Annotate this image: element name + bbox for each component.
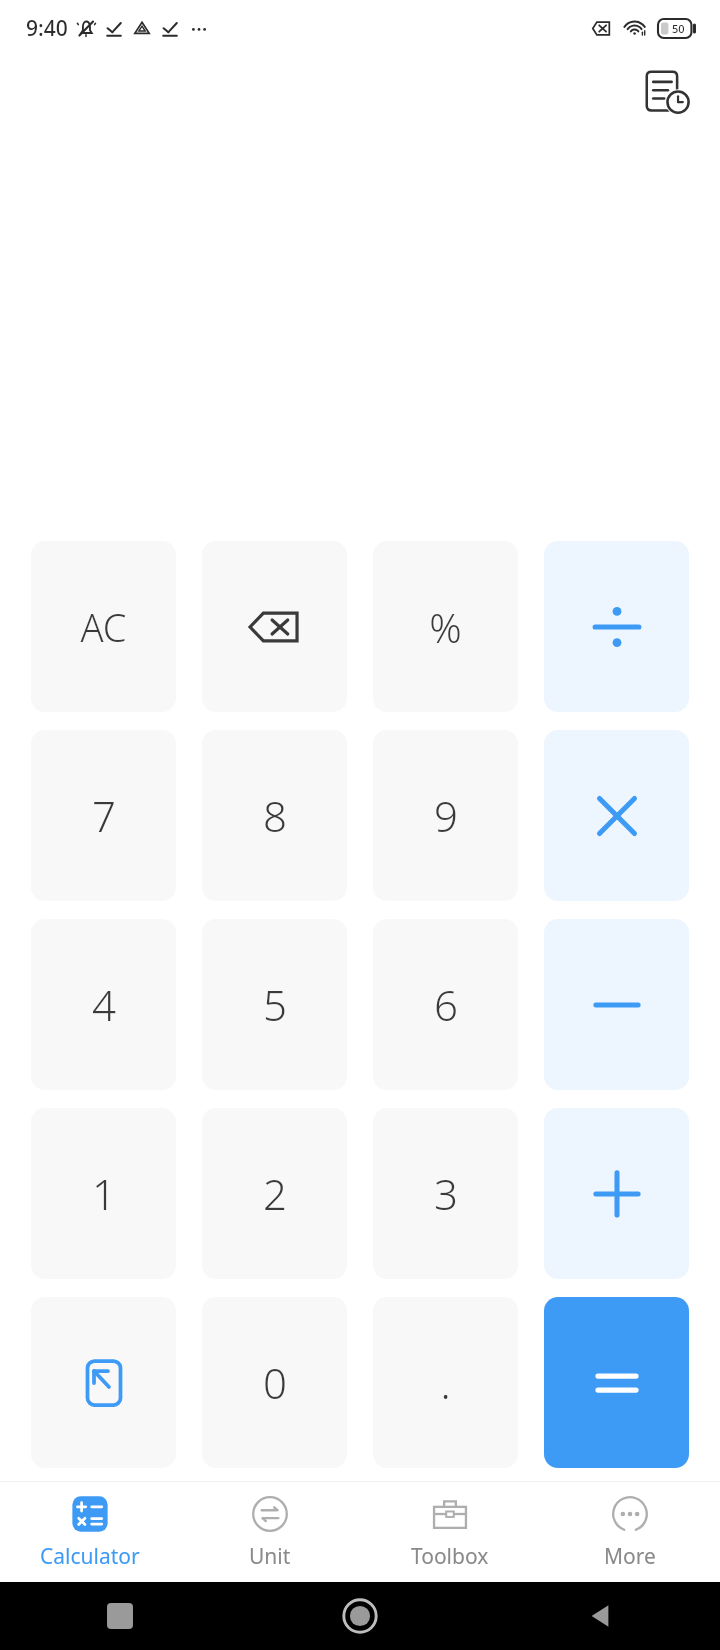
staticText: 50 — [672, 21, 685, 36]
button[interactable]: Toolbox — [360, 1482, 540, 1582]
button[interactable]: 1 — [31, 1108, 176, 1279]
staticText: 3 — [434, 1165, 458, 1222]
staticText: 8 — [263, 787, 287, 844]
button[interactable]: Plus — [544, 1108, 689, 1279]
staticText: 4 — [92, 976, 116, 1033]
button[interactable]: More — [540, 1482, 720, 1582]
button[interactable]: Equals — [544, 1297, 689, 1468]
button[interactable]: Recent apps — [107, 1603, 133, 1629]
staticText: 6 — [434, 976, 458, 1033]
staticText: AC — [80, 601, 127, 653]
button[interactable]: 8 — [202, 730, 347, 901]
staticText: More — [604, 1542, 656, 1571]
button[interactable]: 6 — [373, 919, 518, 1090]
staticText: Calculator — [40, 1542, 140, 1571]
staticText: 1 — [92, 1165, 116, 1222]
staticText: % — [429, 600, 462, 654]
staticText: 9:40 — [26, 14, 68, 43]
button[interactable]: History — [636, 61, 698, 123]
button[interactable]: Calculator — [0, 1482, 180, 1582]
button[interactable]: Expand — [31, 1297, 176, 1468]
button[interactable]: 0 — [202, 1297, 347, 1468]
staticText: 2 — [263, 1165, 287, 1222]
staticText: 5 — [263, 976, 287, 1033]
staticText: Unit — [249, 1542, 291, 1571]
button[interactable]: 7 — [31, 730, 176, 901]
button[interactable]: Multiply — [544, 730, 689, 901]
staticText: 0 — [263, 1354, 287, 1411]
button[interactable]: Back — [585, 1601, 615, 1631]
button[interactable]: AC — [31, 541, 176, 712]
button[interactable]: 5 — [202, 919, 347, 1090]
button[interactable]: Minus — [544, 919, 689, 1090]
staticText: 7 — [92, 787, 116, 844]
button[interactable]: Divide — [544, 541, 689, 712]
staticText: 9 — [434, 787, 458, 844]
button[interactable]: Unit — [180, 1482, 360, 1582]
button[interactable]: Percent — [373, 541, 518, 712]
button[interactable]: Backspace — [202, 541, 347, 712]
button[interactable]: Home — [342, 1598, 378, 1634]
button[interactable]: Decimal point — [373, 1297, 518, 1468]
staticText: Toolbox — [411, 1542, 489, 1571]
staticText: . — [440, 1354, 451, 1411]
button[interactable]: 2 — [202, 1108, 347, 1279]
button[interactable]: 3 — [373, 1108, 518, 1279]
button[interactable]: 4 — [31, 919, 176, 1090]
button[interactable]: 9 — [373, 730, 518, 901]
